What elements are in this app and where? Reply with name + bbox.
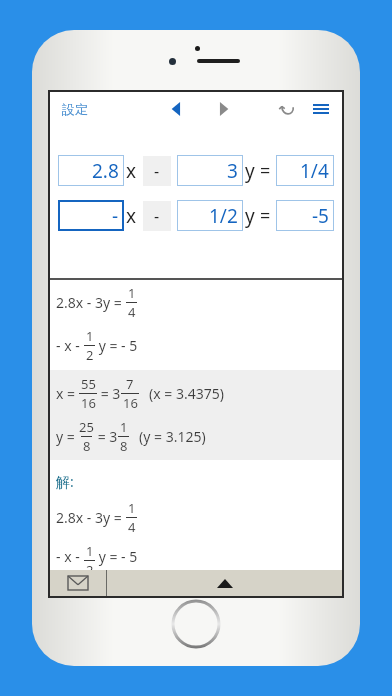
staticText: x <box>126 158 137 184</box>
staticText: 1 <box>86 542 94 560</box>
staticText: 8 <box>83 437 91 455</box>
staticText: 3 <box>227 158 238 184</box>
staticText: = <box>260 203 271 228</box>
staticText: - <box>112 203 119 229</box>
staticText: 1 <box>120 418 128 436</box>
button[interactable]: - <box>143 156 171 186</box>
staticText: - x - <box>56 336 84 355</box>
staticText: 2.8x - 3y = <box>56 508 126 527</box>
staticText: (x = 3.4375) <box>149 384 224 403</box>
staticText: 2.8 <box>92 158 119 184</box>
staticText: x <box>126 203 137 229</box>
staticText: -5 <box>312 203 329 229</box>
staticText: 16 <box>123 394 138 412</box>
staticText: - <box>154 205 160 227</box>
staticText: 1 <box>86 327 94 345</box>
staticText: 1 <box>128 499 136 517</box>
button[interactable]: Expand <box>107 570 342 596</box>
staticText: 4 <box>128 518 136 536</box>
staticText: 解: <box>56 472 74 491</box>
button[interactable]: - <box>58 200 124 231</box>
staticText: 1 <box>128 284 136 302</box>
staticText: 7 <box>126 375 134 393</box>
staticText: 設定 <box>62 101 88 117</box>
staticText: 2 <box>86 346 94 364</box>
staticText: - <box>154 160 160 182</box>
staticText: y <box>245 203 255 229</box>
button[interactable]: 2.8 <box>58 155 124 186</box>
staticText: y = - 5 <box>95 547 138 566</box>
button[interactable]: Mail <box>50 570 106 596</box>
staticText: 2.8x - 3y = <box>56 293 126 312</box>
staticText: y = - 5 <box>95 336 138 355</box>
staticText: x = <box>56 384 79 403</box>
staticText: - x - <box>56 547 84 566</box>
button[interactable]: 3 <box>177 155 243 186</box>
staticText: 16 <box>81 394 96 412</box>
staticText: 25 <box>79 418 94 436</box>
button[interactable]: Previous <box>162 94 192 124</box>
staticText: 4 <box>128 303 136 321</box>
staticText: 2 <box>86 561 94 570</box>
staticText: 55 <box>81 375 96 393</box>
staticText: = 3 <box>94 427 118 446</box>
staticText: (y = 3.125) <box>139 427 206 446</box>
button[interactable]: Undo <box>272 94 302 124</box>
button[interactable]: Menu <box>306 94 336 124</box>
button[interactable]: - <box>143 201 171 231</box>
staticText: 1/4 <box>300 158 329 184</box>
staticText: y <box>245 158 255 184</box>
staticText: 1/2 <box>209 203 238 229</box>
staticText: = 3 <box>97 384 121 403</box>
button[interactable]: 設定 <box>50 95 100 123</box>
button[interactable]: 1/4 <box>276 155 334 186</box>
button[interactable]: Next <box>208 94 238 124</box>
staticText: y = <box>56 427 79 446</box>
button[interactable]: 1/2 <box>177 200 243 231</box>
staticText: 8 <box>120 437 128 455</box>
staticText: = <box>260 158 271 183</box>
button[interactable]: -5 <box>276 200 334 231</box>
